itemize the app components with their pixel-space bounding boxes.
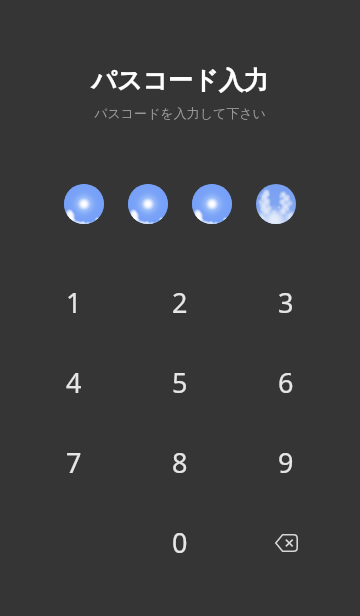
button[interactable]: 5 xyxy=(127,342,233,422)
button[interactable]: 8 xyxy=(127,422,233,502)
staticText: 0 xyxy=(172,524,188,561)
staticText: 2 xyxy=(172,284,188,321)
staticText: 9 xyxy=(278,444,294,481)
button[interactable]: 0 xyxy=(127,502,233,582)
button[interactable]: 2 xyxy=(127,262,233,342)
button[interactable]: 4 xyxy=(21,342,127,422)
staticText: 1 xyxy=(66,284,82,321)
staticText: 3 xyxy=(278,284,294,321)
staticText: 7 xyxy=(66,444,82,481)
button[interactable]: 6 xyxy=(233,342,339,422)
button[interactable]: Delete xyxy=(233,502,339,582)
button[interactable]: 9 xyxy=(233,422,339,502)
button[interactable]: 3 xyxy=(233,262,339,342)
staticText: 4 xyxy=(66,364,82,401)
button[interactable]: 1 xyxy=(21,262,127,342)
button[interactable]: 7 xyxy=(21,422,127,502)
staticText: パスコード入力 xyxy=(91,65,269,96)
staticText: 5 xyxy=(172,364,188,401)
staticText: パスコードを入力して下さい xyxy=(94,105,266,121)
staticText: 8 xyxy=(172,444,188,481)
staticText: 6 xyxy=(278,364,294,401)
